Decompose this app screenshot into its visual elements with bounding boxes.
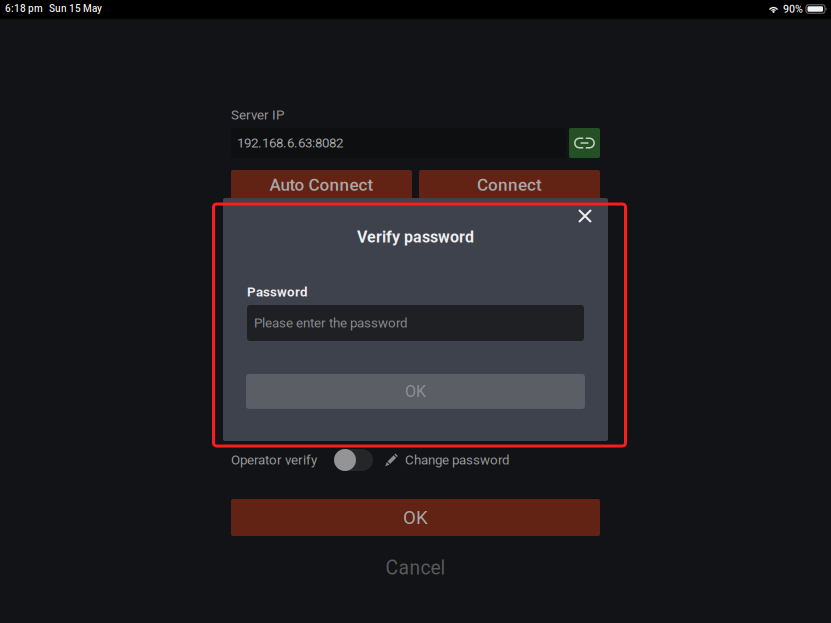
button[interactable]: Change password: [385, 449, 565, 471]
button[interactable]: OK: [246, 374, 585, 409]
staticText: Sun 15 May: [49, 3, 102, 14]
button[interactable]: Auto Connect: [231, 170, 412, 200]
button[interactable]: Operator verify: [334, 449, 373, 471]
staticText: OK: [405, 382, 426, 401]
staticText: Verify password: [357, 228, 474, 246]
staticText: Operator verify: [231, 452, 317, 468]
staticText: Connect: [477, 175, 542, 195]
staticText: 192.168.6.63:8082: [237, 135, 343, 151]
staticText: Cancel: [385, 557, 445, 579]
button[interactable]: Connect link: [569, 128, 600, 158]
button[interactable]: Cancel: [231, 551, 600, 585]
button[interactable]: OK: [231, 499, 600, 536]
button[interactable]: Connect: [419, 170, 600, 200]
button[interactable]: Close: [565, 198, 605, 234]
staticText: Auto Connect: [269, 175, 373, 195]
staticText: OK: [403, 507, 428, 528]
staticText: Server IP: [231, 107, 284, 123]
staticText: 90%: [783, 3, 803, 15]
staticText: Please enter the password: [254, 315, 408, 331]
staticText: Password: [247, 284, 308, 300]
staticText: Change password: [405, 452, 510, 468]
staticText: 6:18 pm: [5, 3, 43, 14]
